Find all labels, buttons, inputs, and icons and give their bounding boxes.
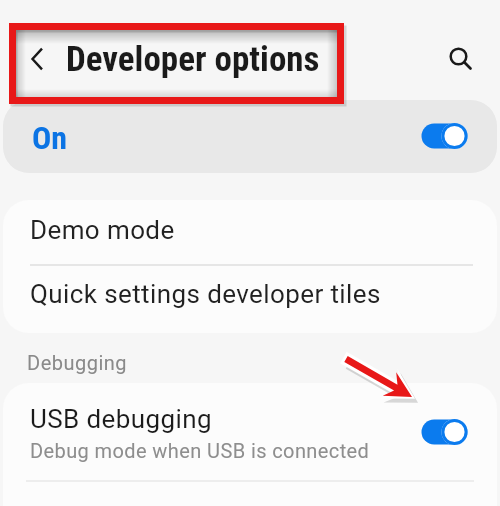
button[interactable]: USB debugging [3, 383, 497, 506]
staticText: On [32, 119, 68, 157]
staticText: Demo mode [30, 215, 175, 245]
button[interactable]: Quick settings developer tiles [3, 266, 497, 333]
button[interactable]: On [3, 100, 497, 173]
staticText: Developer options [66, 39, 320, 80]
button[interactable] [444, 42, 480, 78]
button[interactable]: Demo mode [3, 200, 497, 265]
staticText: Quick settings developer tiles [30, 279, 381, 309]
staticText: USB debugging [30, 404, 213, 434]
staticText: Debug mode when USB is connected [30, 439, 370, 462]
staticText: Debugging [27, 351, 128, 374]
button[interactable] [20, 42, 58, 80]
